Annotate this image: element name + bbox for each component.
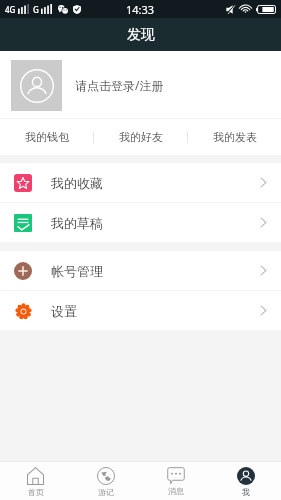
staticText: 请点击登录/注册 [75, 77, 164, 93]
staticText: 游记 [98, 487, 114, 497]
staticText: 发现 [127, 26, 155, 44]
button[interactable]: 设置 [0, 291, 281, 330]
staticText: G [33, 4, 39, 15]
staticText: 我 [242, 487, 250, 497]
button[interactable]: 请点击登录/注册 [0, 51, 281, 118]
staticText: 14:33 [126, 2, 155, 17]
staticText: 我的发表 [213, 130, 257, 144]
button[interactable]: 我的草稿 [0, 203, 281, 242]
staticText: 我的钱包 [25, 130, 69, 144]
staticText: 帐号管理 [51, 263, 103, 279]
staticText: 我的收藏 [51, 175, 103, 191]
button[interactable]: 我的发表 [188, 119, 281, 155]
staticText: 设置 [51, 303, 77, 319]
button[interactable]: 我 [211, 462, 281, 500]
staticText: 首页 [28, 487, 44, 497]
staticText: 4G [5, 4, 16, 15]
button[interactable]: 首页 [0, 462, 71, 500]
button[interactable]: 我的收藏 [0, 163, 281, 202]
button[interactable]: 我的好友 [94, 119, 187, 155]
button[interactable]: 消息 [141, 462, 211, 500]
button[interactable]: 我的钱包 [0, 119, 93, 155]
button[interactable]: 游记 [71, 462, 141, 500]
staticText: 我的草稿 [51, 215, 103, 231]
staticText: 我的好友 [119, 130, 163, 144]
staticText: 消息 [168, 486, 184, 496]
button[interactable]: 帐号管理 [0, 251, 281, 290]
